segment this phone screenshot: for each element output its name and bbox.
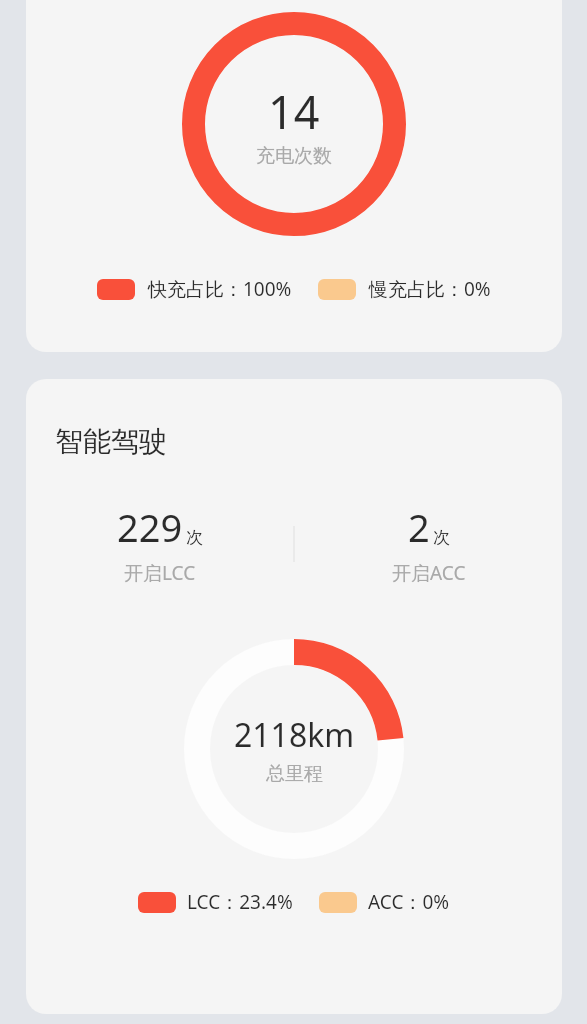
staticText: 充电次数 xyxy=(256,144,332,168)
staticText: 慢充占比：0% xyxy=(369,276,491,302)
staticText: 智能驾驶 xyxy=(55,424,167,459)
staticText: LCC：23.4% xyxy=(187,889,293,915)
staticText: 开启ACC xyxy=(392,560,466,586)
staticText: 229 xyxy=(117,501,183,553)
staticText: 快充占比：100% xyxy=(148,276,292,302)
staticText: 2118km xyxy=(234,713,355,757)
staticText: ACC：0% xyxy=(368,889,450,915)
staticText: 14 xyxy=(268,81,320,142)
staticText: 2 xyxy=(408,501,430,553)
staticText: 次 xyxy=(186,527,203,548)
staticText: 次 xyxy=(433,527,450,548)
staticText: 总里程 xyxy=(266,762,323,786)
button[interactable]: 智能驾驶 xyxy=(26,379,562,1014)
staticText: 开启LCC xyxy=(124,560,196,586)
button[interactable]: 14 xyxy=(26,0,562,352)
